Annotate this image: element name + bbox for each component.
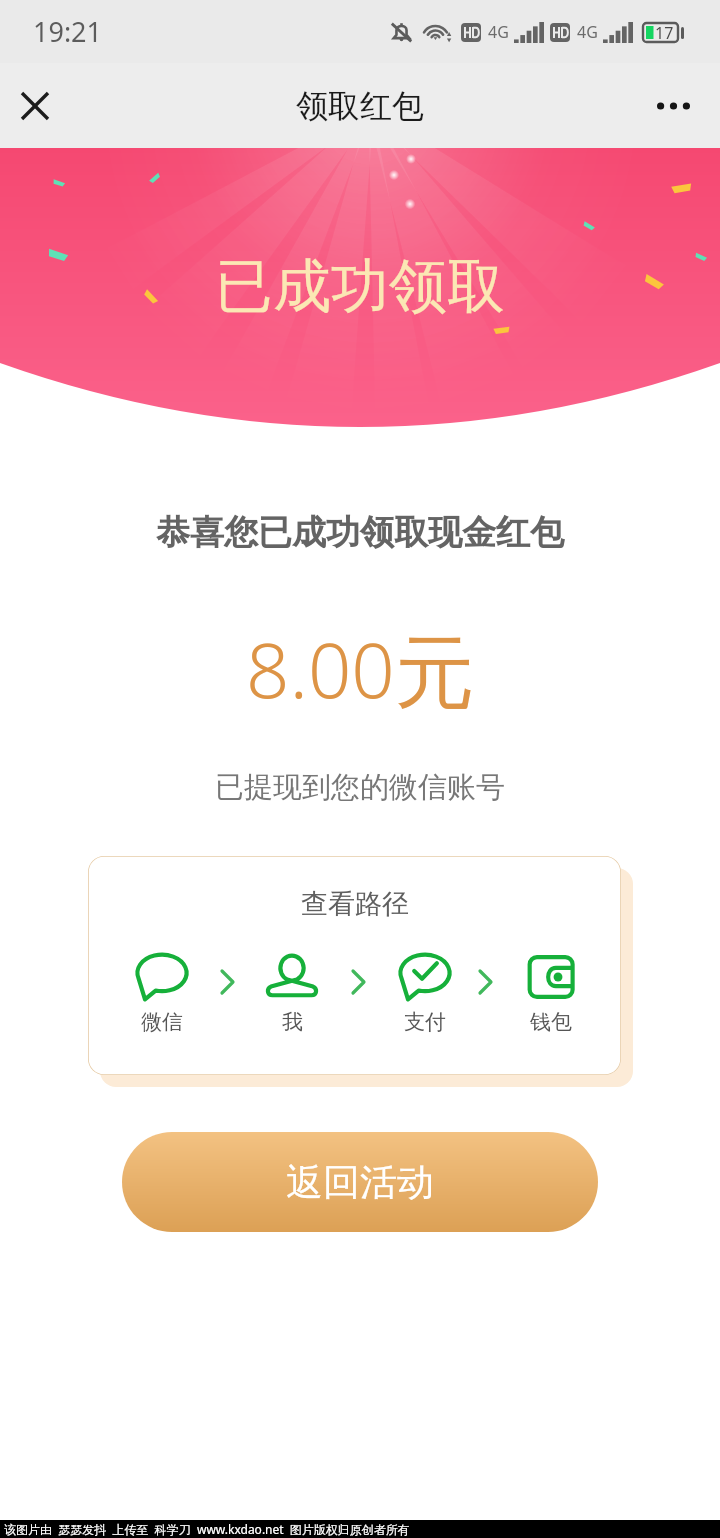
staticText: 钱包 [530,1009,572,1035]
staticText: 19:21 [33,13,103,50]
staticText: 元 [395,623,475,724]
button[interactable]: 微信 [130,953,194,1035]
staticText: 领取红包 [296,86,424,126]
staticText: 我 [282,1009,303,1035]
staticText: 支付 [404,1009,446,1035]
staticText: 返回活动 [286,1159,434,1206]
button[interactable]: More options [635,63,711,148]
staticText: 微信 [141,1009,183,1035]
button[interactable]: 我 [260,953,324,1035]
staticText: 8.00 [246,617,395,721]
staticText: 4G [577,21,598,43]
button[interactable]: 支付 [393,953,457,1035]
staticText: 恭喜您已成功领取现金红包 [0,511,720,554]
staticText: 查看路径 [301,887,409,921]
staticText: 已成功领取 [0,250,720,323]
staticText: 17 [655,22,674,43]
button[interactable]: 钱包 [519,953,583,1035]
staticText: 该图片由 瑟瑟发抖 上传至 科学刀 www.kxdao.net 图片版权归原创者… [4,1521,410,1537]
staticText: 已提现到您的微信账号 [0,769,720,806]
staticText: 4G [488,21,509,43]
button[interactable]: 返回活动 [122,1132,598,1232]
button[interactable]: Close [0,63,70,148]
